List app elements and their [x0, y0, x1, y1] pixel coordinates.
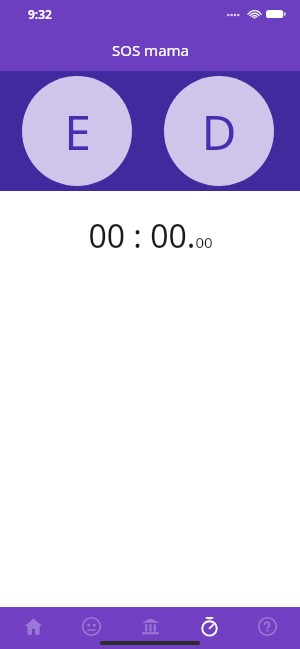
staticText: 9:32 [28, 6, 52, 22]
button[interactable]: Resources [124, 607, 176, 649]
button[interactable]: E [22, 76, 132, 186]
staticText: E [64, 99, 91, 164]
button[interactable]: D [164, 76, 274, 186]
staticText: 00 : 00.00 [88, 214, 213, 258]
button[interactable]: Home [7, 607, 59, 649]
button[interactable]: Stopwatch [183, 607, 235, 649]
button[interactable]: Contacts [65, 607, 117, 649]
staticText: SOS mama [112, 40, 189, 60]
staticText: D [201, 99, 237, 164]
button[interactable]: Help [241, 607, 293, 649]
